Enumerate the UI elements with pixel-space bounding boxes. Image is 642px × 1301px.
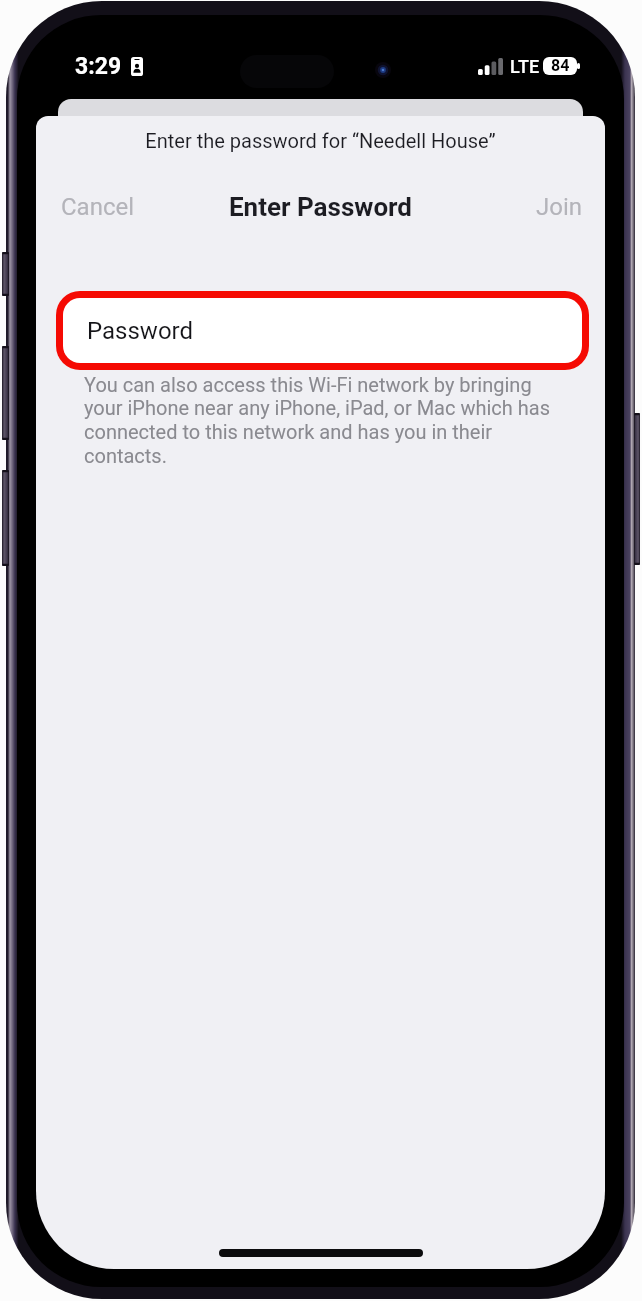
other: Battery 84 percent: [577, 63, 580, 69]
staticText: Cancel: [61, 193, 135, 221]
other: Cellular signal strength: [478, 58, 503, 75]
other: Home indicator: [219, 1249, 423, 1257]
staticText: You can also access this Wi-Fi network b…: [84, 373, 564, 467]
staticText: Enter Password: [36, 192, 605, 222]
staticText: LTE: [510, 56, 540, 77]
staticText: 84: [551, 57, 570, 74]
staticText: Join: [536, 193, 583, 221]
button[interactable]: Password: [63, 298, 582, 363]
staticText: 3:29: [75, 53, 122, 80]
staticText: Enter the password for “Needell House”: [36, 129, 605, 152]
staticText: Password: [87, 317, 194, 345]
button[interactable]: Join: [516, 186, 596, 228]
other: Personal hotspot card: [131, 57, 143, 76]
button[interactable]: Cancel: [44, 186, 150, 228]
